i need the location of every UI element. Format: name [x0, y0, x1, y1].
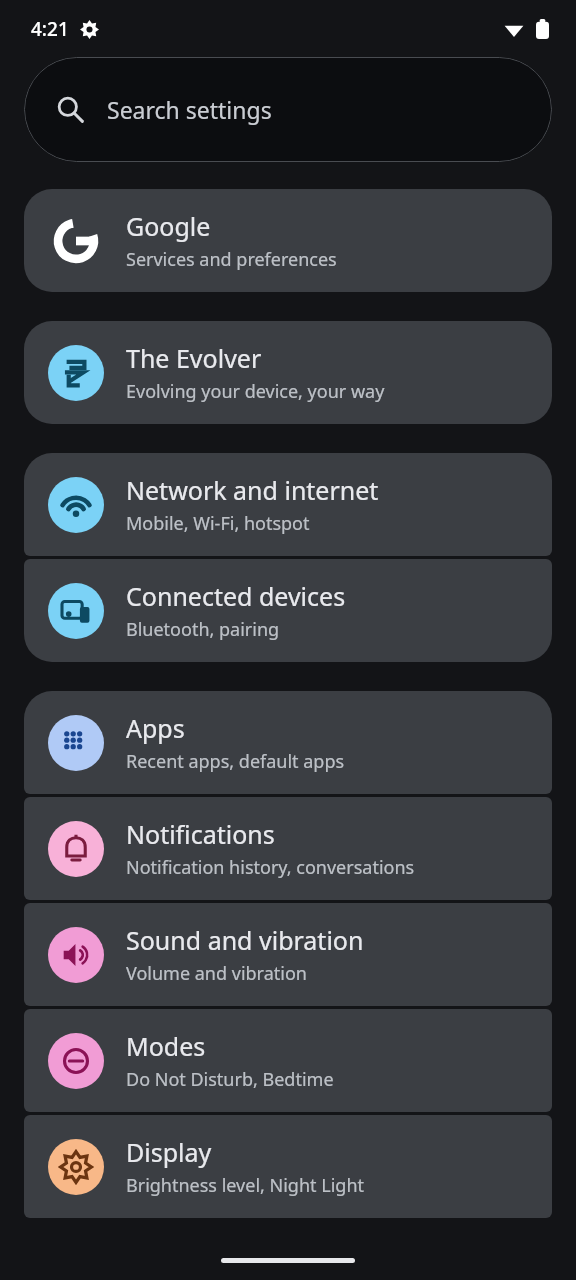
button[interactable]: Google — [24, 189, 552, 292]
staticText: Notification history, conversations — [126, 855, 415, 880]
staticText: Sound and vibration — [126, 923, 364, 957]
staticText: Brightness level, Night Light — [126, 1173, 365, 1198]
staticText: 4:21 — [31, 16, 69, 42]
staticText: Notifications — [126, 817, 275, 851]
staticText: Mobile, Wi-Fi, hotspot — [126, 511, 310, 536]
staticText: Bluetooth, pairing — [126, 617, 280, 642]
button[interactable]: Apps — [24, 691, 552, 794]
staticText: Connected devices — [126, 579, 346, 613]
staticText: Modes — [126, 1029, 206, 1063]
staticText: Do Not Disturb, Bedtime — [126, 1067, 334, 1092]
staticText: Network and internet — [126, 473, 379, 507]
staticText: The Evolver — [126, 341, 262, 375]
staticText: Google — [126, 209, 211, 243]
button[interactable]: Connected devices — [24, 559, 552, 662]
button[interactable]: Sound and vibration — [24, 903, 552, 1006]
staticText: Apps — [126, 711, 185, 745]
button[interactable]: Modes — [24, 1009, 552, 1112]
staticText: Display — [126, 1135, 212, 1169]
staticText: Recent apps, default apps — [126, 749, 345, 774]
staticText: Volume and vibration — [126, 961, 307, 986]
staticText: Evolving your device, your way — [126, 379, 385, 404]
button[interactable]: The Evolver — [24, 321, 552, 424]
staticText: Services and preferences — [126, 247, 337, 272]
button[interactable]: Notifications — [24, 797, 552, 900]
staticText: Search settings — [107, 94, 272, 125]
button[interactable]: Display — [24, 1115, 552, 1218]
button[interactable]: Search settings — [24, 57, 552, 162]
button[interactable]: Network and internet — [24, 453, 552, 556]
